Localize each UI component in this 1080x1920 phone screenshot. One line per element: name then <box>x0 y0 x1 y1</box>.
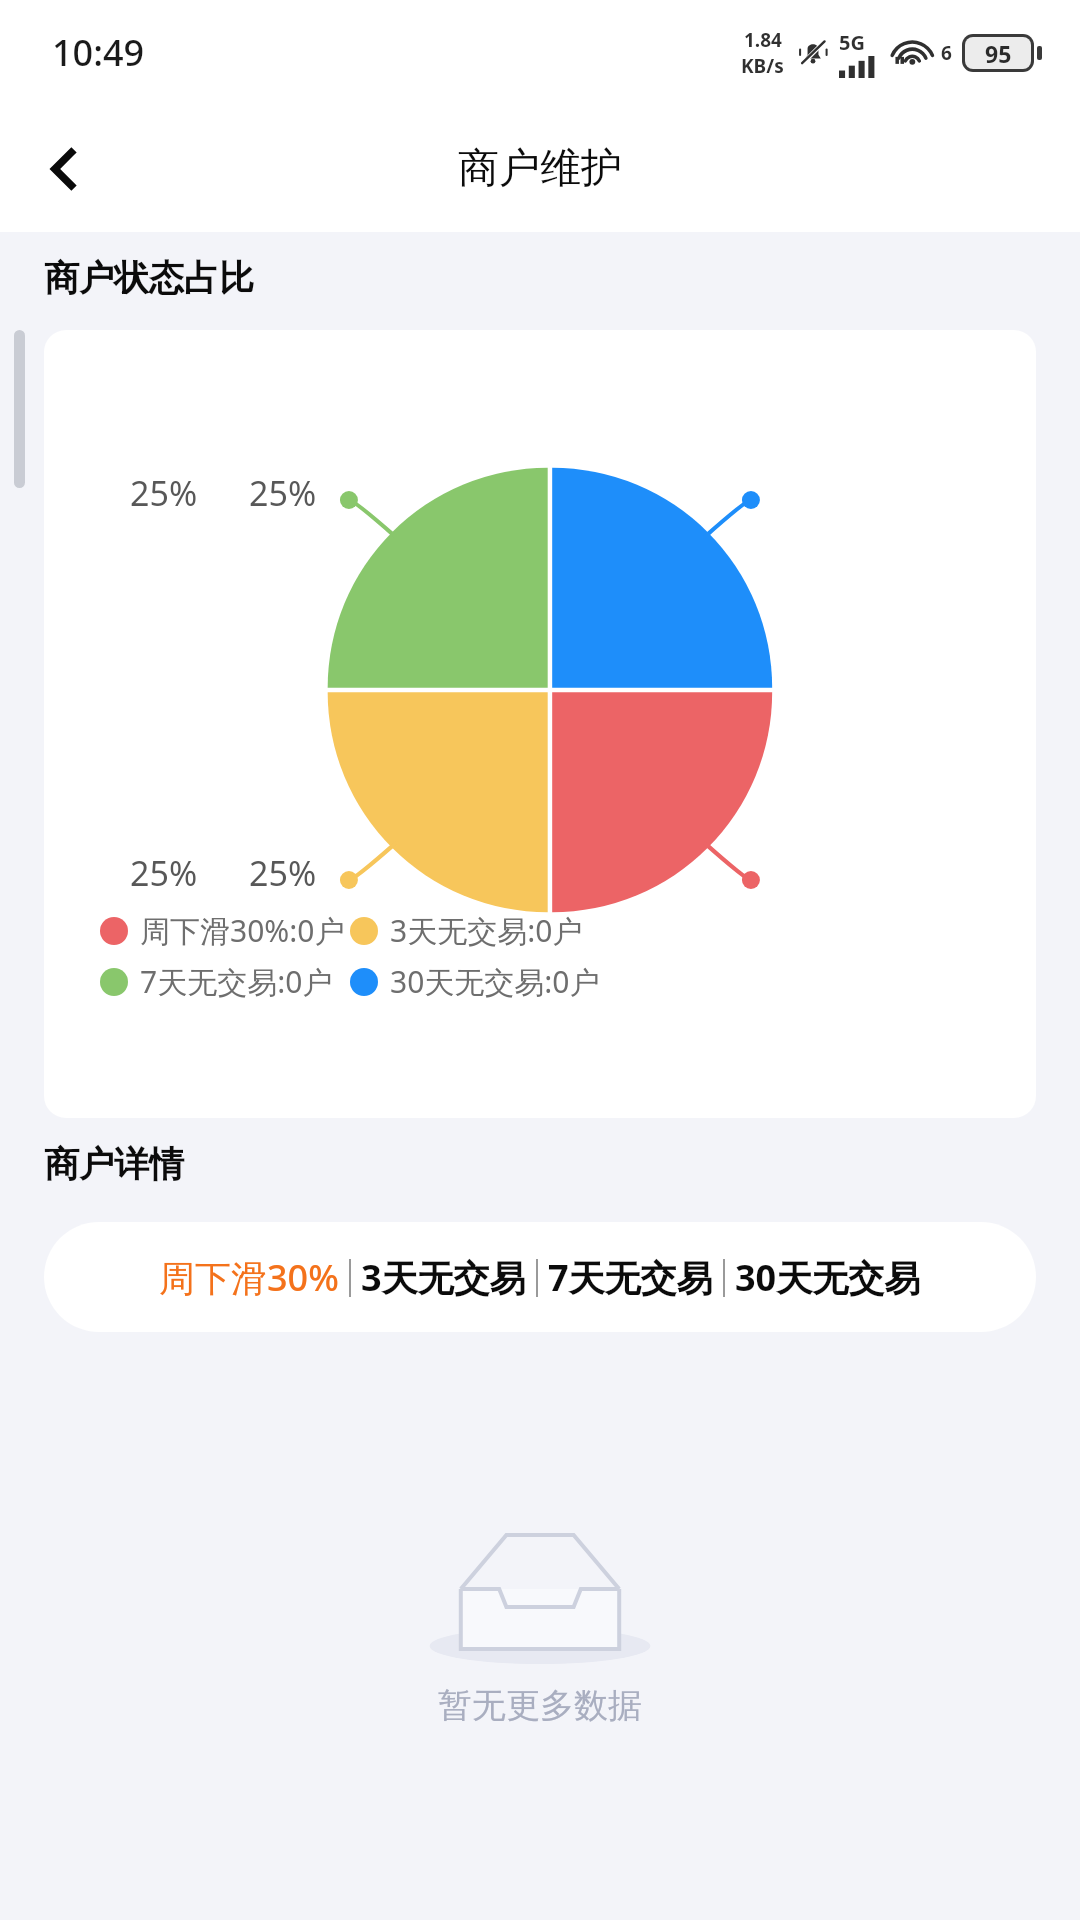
button[interactable]: 3天无交易 <box>351 1235 536 1320</box>
staticText: 6 <box>941 40 952 66</box>
staticText: 周下滑30% <box>159 1253 339 1302</box>
button[interactable]: Back <box>22 127 106 211</box>
staticText: 1.84 <box>744 27 782 53</box>
staticText: 商户维护 <box>458 143 622 195</box>
staticText: 暂无更多数据 <box>438 1684 642 1727</box>
staticText: 周下滑30%:0户 <box>140 910 345 951</box>
staticText: 5G <box>839 29 865 56</box>
staticText: 25% <box>130 850 198 896</box>
staticText: 3天无交易:0户 <box>390 910 583 951</box>
staticText: 3天无交易 <box>361 1253 526 1302</box>
staticText: 25% <box>249 850 317 896</box>
button[interactable]: 周下滑30% <box>149 1235 349 1320</box>
staticText: 95 <box>985 38 1012 69</box>
staticText: 7天无交易 <box>548 1253 713 1302</box>
staticText: 商户详情 <box>44 1142 184 1186</box>
staticText: KB/s <box>741 53 784 79</box>
button[interactable]: 7天无交易 <box>538 1235 723 1320</box>
staticText: 25% <box>249 470 317 516</box>
staticText: 商户状态占比 <box>44 256 254 300</box>
staticText: 30天无交易 <box>735 1253 921 1302</box>
staticText: 25% <box>130 470 198 516</box>
staticText: 30天无交易:0户 <box>390 961 600 1002</box>
staticText: 7天无交易:0户 <box>140 961 333 1002</box>
button[interactable]: 30天无交易 <box>725 1235 931 1320</box>
staticText: 10:49 <box>52 28 145 77</box>
